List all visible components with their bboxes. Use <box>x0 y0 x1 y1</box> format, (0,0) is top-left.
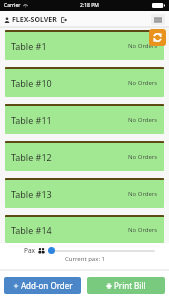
staticText: No Orders <box>128 42 158 50</box>
button[interactable]: Sign out <box>60 16 68 24</box>
staticText: Carrier <box>4 2 21 9</box>
button[interactable]: Print Bill <box>87 277 165 294</box>
staticText: No Orders <box>128 226 158 234</box>
staticText: 2:18 PM <box>80 2 99 9</box>
staticText: Add-on Order <box>21 280 73 291</box>
button[interactable]: Table #14 <box>5 215 164 243</box>
staticText: FLEX-SOLVER <box>12 15 57 25</box>
button[interactable]: Table #13 <box>5 178 164 208</box>
staticText: Table #11 <box>11 114 52 126</box>
staticText: Table #13 <box>11 188 52 200</box>
staticText: No Orders <box>128 153 158 161</box>
button[interactable]: Pax slider <box>48 246 155 255</box>
staticText: Table #12 <box>11 151 52 163</box>
staticText: Pax <box>24 246 36 255</box>
staticText: No Orders <box>128 190 158 198</box>
button[interactable]: Add-on Order <box>4 277 81 294</box>
button[interactable]: Table #1 <box>5 30 164 60</box>
button[interactable]: Table #10 <box>5 67 164 97</box>
button[interactable]: Refresh <box>149 29 166 46</box>
staticText: No Orders <box>128 116 158 124</box>
button[interactable]: FLEX-SOLVER <box>4 15 57 25</box>
staticText: Table #10 <box>11 77 52 89</box>
staticText: Print Bill <box>114 280 146 291</box>
button[interactable]: Menu <box>151 14 165 25</box>
staticText: Table #1 <box>11 40 47 52</box>
button[interactable]: Table #12 <box>5 141 164 171</box>
button[interactable]: Table #11 <box>5 104 164 134</box>
staticText: Table #14 <box>11 224 52 236</box>
staticText: Current pax: 1 <box>65 255 105 263</box>
staticText: No Orders <box>128 79 158 87</box>
